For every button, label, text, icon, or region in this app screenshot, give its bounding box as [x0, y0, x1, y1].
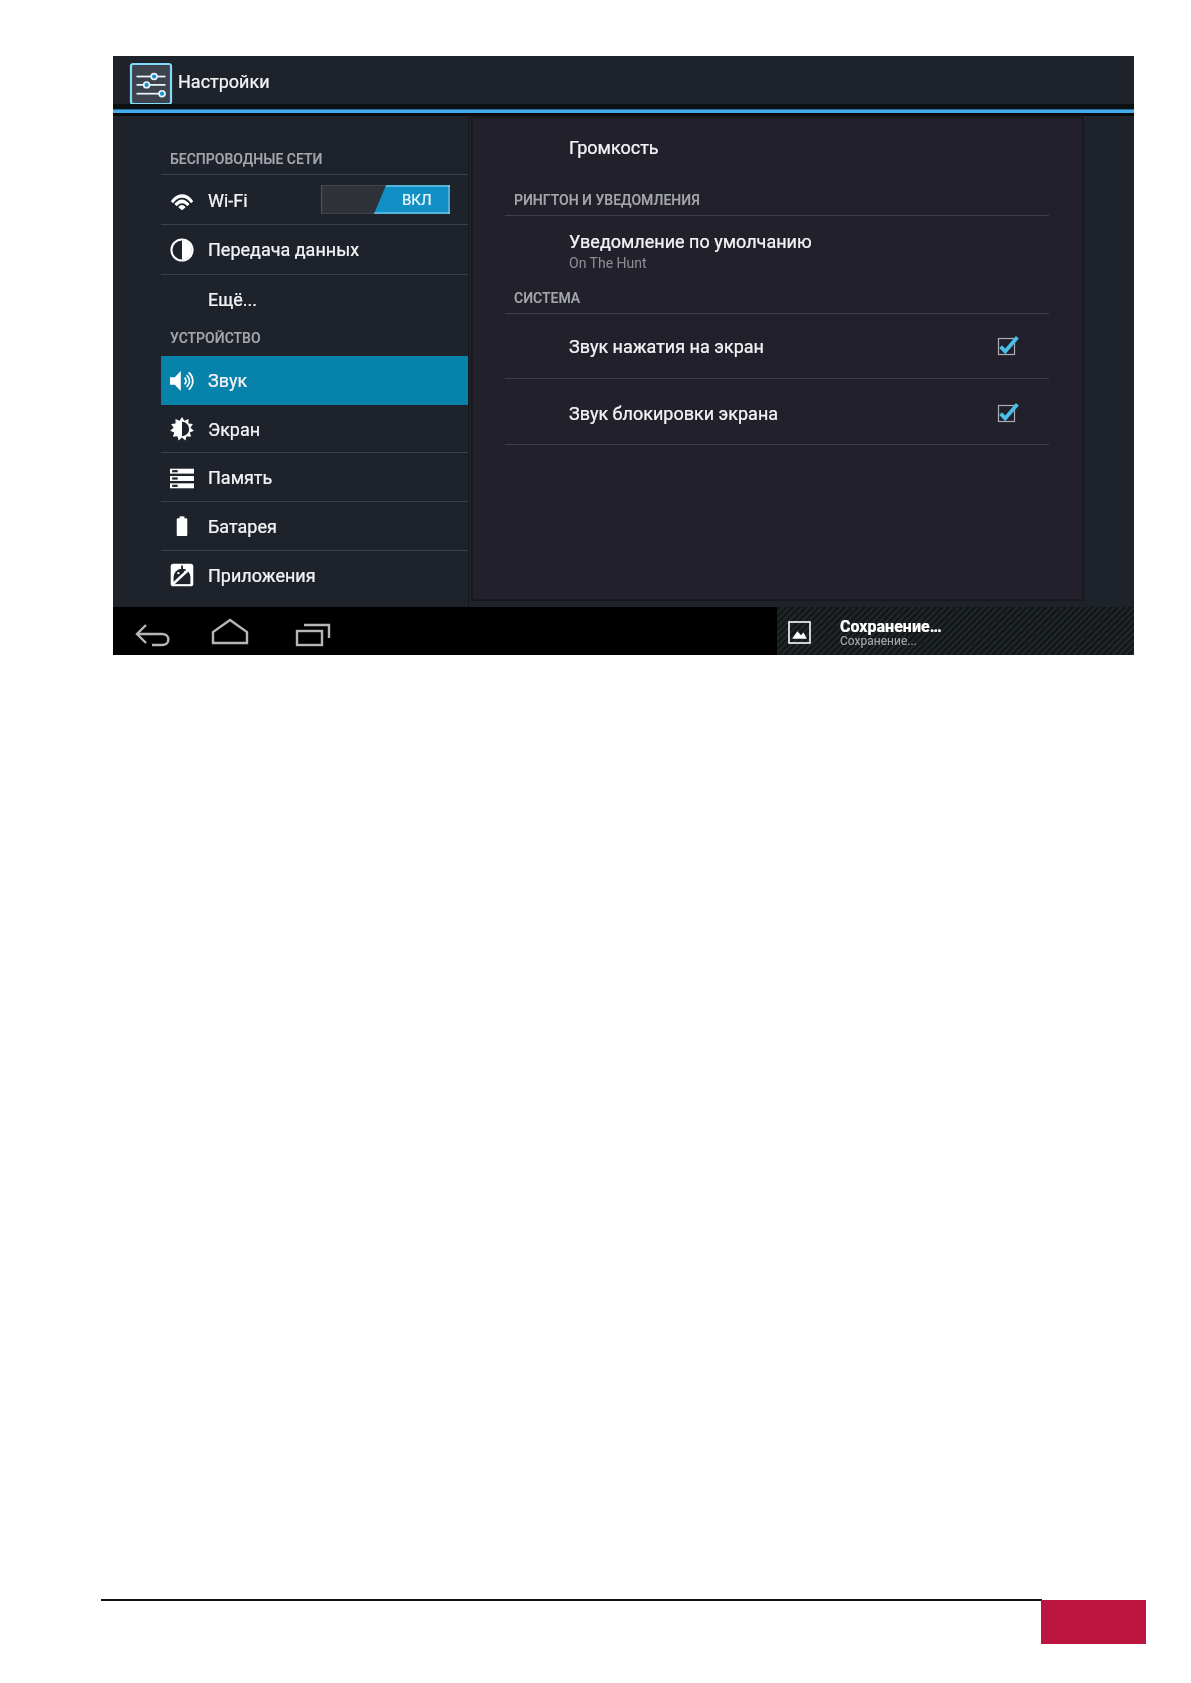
- staticText: Звук: [208, 370, 248, 391]
- staticText: Память: [208, 467, 273, 488]
- button[interactable]: Батарея: [161, 502, 468, 550]
- staticText: Wi-Fi: [208, 190, 248, 211]
- staticText: ВКЛ: [402, 191, 432, 209]
- button[interactable]: Звук блокировки экрана: [472, 389, 1083, 437]
- staticText: Приложения: [208, 565, 316, 586]
- staticText: Звук нажатия на экран: [569, 336, 764, 357]
- staticText: Уведомление по умолчанию: [569, 231, 812, 252]
- staticText: УСТРОЙСТВО: [170, 330, 261, 346]
- staticText: Настройки: [178, 71, 270, 92]
- button[interactable]: Передача данных: [161, 225, 468, 274]
- button[interactable]: Уведомление по умолчанию: [472, 231, 1083, 277]
- button[interactable]: Сохранение…: [777, 607, 1134, 655]
- staticText: БЕСПРОВОДНЫЕ СЕТИ: [170, 151, 323, 167]
- staticText: Экран: [208, 419, 261, 440]
- button[interactable]: Память: [161, 453, 468, 501]
- staticText: Сохранение…: [840, 617, 942, 636]
- button[interactable]: Звук: [161, 356, 468, 405]
- button[interactable]: Приложения: [161, 551, 468, 599]
- button[interactable]: Settings: [129, 62, 173, 106]
- button[interactable]: Звук нажатия на экран: [472, 322, 1083, 370]
- staticText: Звук блокировки экрана: [569, 403, 779, 424]
- button[interactable]: Home: [209, 607, 257, 655]
- staticText: Передача данных: [208, 239, 360, 260]
- button[interactable]: Wi-Fi: [161, 175, 468, 225]
- button[interactable]: Громкость: [472, 131, 1083, 171]
- staticText: Ещё...: [208, 289, 258, 310]
- staticText: Громкость: [569, 137, 659, 158]
- staticText: On The Hunt: [569, 255, 647, 271]
- staticText: Сохранение...: [840, 634, 917, 648]
- button[interactable]: Back: [133, 607, 181, 655]
- button[interactable]: Ещё...: [161, 275, 468, 324]
- button[interactable]: Wi-Fi on/off: [321, 185, 450, 214]
- staticText: Батарея: [208, 516, 277, 537]
- staticText: РИНГТОН И УВЕДОМЛЕНИЯ: [514, 192, 700, 208]
- button[interactable]: Экран: [161, 405, 468, 453]
- button[interactable]: Recent apps: [294, 607, 342, 655]
- staticText: СИСТЕМА: [514, 290, 581, 306]
